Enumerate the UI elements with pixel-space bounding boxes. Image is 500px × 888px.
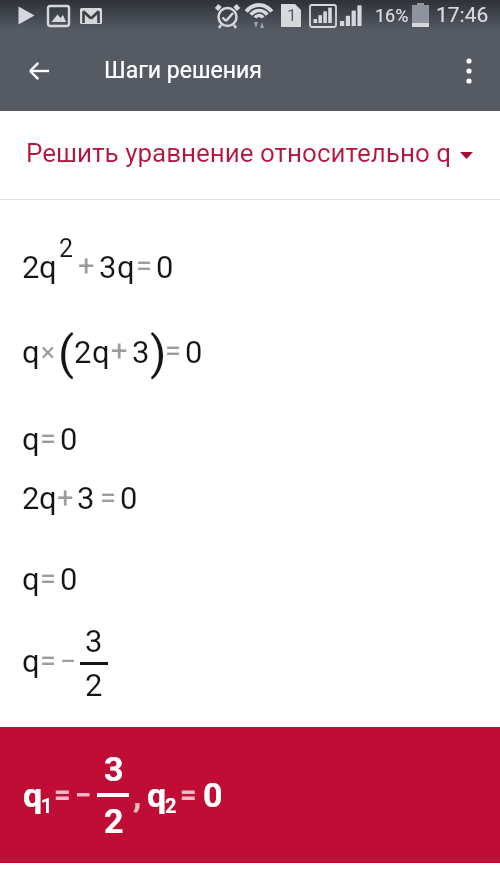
staticText: 2 xyxy=(165,794,177,817)
staticText: ) xyxy=(150,325,167,380)
staticText: 3 xyxy=(77,480,95,516)
staticText: + xyxy=(111,334,128,368)
staticText: = xyxy=(54,778,71,812)
staticText: 2 xyxy=(85,667,103,703)
staticText: ( xyxy=(58,325,75,380)
staticText: 0 xyxy=(60,561,78,597)
staticText: 0 xyxy=(120,480,138,516)
staticText: = xyxy=(40,644,56,678)
staticText: 3 xyxy=(132,334,150,370)
staticText: Решить уравнение относительно q xyxy=(26,138,452,168)
staticText: = xyxy=(180,778,197,812)
staticText: + xyxy=(78,249,95,283)
staticText: 0 xyxy=(185,334,203,370)
staticText: 17:46 xyxy=(436,3,489,28)
staticText: q xyxy=(92,334,110,370)
staticText: 1 xyxy=(41,794,53,817)
staticText: = xyxy=(136,249,152,283)
button[interactable]: Back xyxy=(15,47,63,95)
staticText: q xyxy=(22,643,40,679)
staticText: q xyxy=(117,249,135,285)
staticText: 0 xyxy=(156,249,174,285)
staticText: , xyxy=(133,775,142,815)
staticText: 3 xyxy=(99,249,117,285)
staticText: q xyxy=(23,775,43,815)
staticText: 1 xyxy=(287,5,297,25)
staticText: = xyxy=(40,562,56,596)
button[interactable]: More options xyxy=(445,47,493,95)
staticText: + xyxy=(57,481,74,515)
staticText: − xyxy=(60,644,77,678)
staticText: 0 xyxy=(60,421,78,457)
staticText: q xyxy=(39,480,57,516)
staticText: 2 xyxy=(74,334,92,370)
staticText: 2 xyxy=(104,801,124,841)
staticText: 16% xyxy=(375,5,409,26)
staticText: 2 xyxy=(22,249,40,285)
button[interactable]: q xyxy=(0,727,500,863)
staticText: = xyxy=(165,334,181,368)
button[interactable]: Решить уравнение относительно q xyxy=(0,111,500,200)
staticText: 3 xyxy=(104,749,124,789)
staticText: = xyxy=(100,481,116,515)
staticText: 2 xyxy=(22,480,40,516)
staticText: Шаги решения xyxy=(104,57,262,84)
staticText: 2 xyxy=(59,234,74,263)
staticText: q xyxy=(147,775,167,815)
staticText: q xyxy=(39,249,57,285)
staticText: q xyxy=(22,421,40,457)
staticText: = xyxy=(40,422,56,456)
staticText: − xyxy=(75,778,92,812)
staticText: 0 xyxy=(203,775,223,815)
staticText: q xyxy=(22,561,40,597)
staticText: 3 xyxy=(85,623,103,659)
staticText: q xyxy=(22,334,40,370)
staticText: × xyxy=(41,337,55,367)
